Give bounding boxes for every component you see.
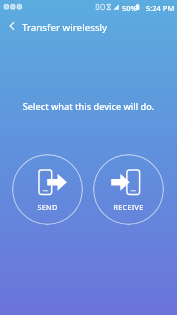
button[interactable]: RECEIVE bbox=[93, 154, 164, 225]
staticText: RECEIVE bbox=[93, 202, 164, 212]
staticText: 5:24 PM bbox=[146, 3, 175, 13]
button[interactable]: SEND bbox=[12, 154, 83, 225]
staticText: 50% bbox=[122, 3, 137, 13]
button[interactable]: Back bbox=[0, 14, 24, 38]
staticText: Select what this device will do. bbox=[0, 100, 177, 112]
staticText: Transfer wirelessly bbox=[22, 21, 108, 34]
staticText: SEND bbox=[12, 202, 83, 212]
